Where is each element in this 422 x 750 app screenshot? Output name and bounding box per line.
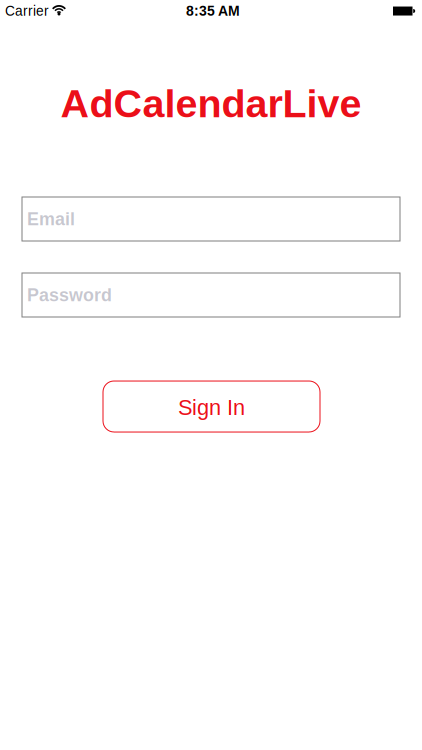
button[interactable]: Email xyxy=(22,197,400,241)
staticText: Email xyxy=(27,209,75,229)
staticText: AdCalendarLive xyxy=(60,81,361,126)
staticText: Password xyxy=(27,285,112,305)
button[interactable]: Sign In xyxy=(103,381,320,432)
staticText: 8:35 AM xyxy=(186,3,240,19)
button[interactable]: Password xyxy=(22,273,400,317)
staticText: Sign In xyxy=(178,395,245,420)
staticText: Carrier xyxy=(5,3,49,19)
